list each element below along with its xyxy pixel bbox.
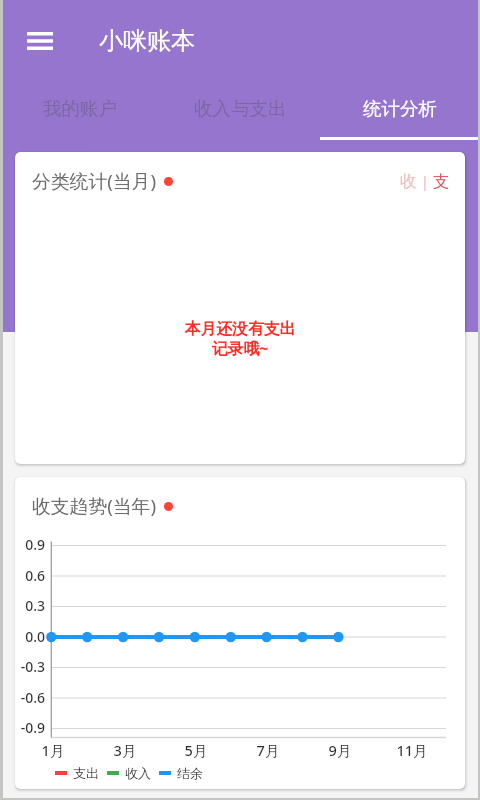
staticText: 分类统计(当月) (32, 168, 157, 194)
staticText: 7月 (243, 740, 293, 760)
staticText: 0.9 (15, 535, 45, 554)
button[interactable]: 统计分析 (320, 82, 480, 138)
staticText: -0.9 (15, 718, 45, 737)
staticText: 11月 (387, 740, 437, 760)
button[interactable]: Menu (18, 19, 62, 63)
staticText: 5月 (171, 740, 221, 760)
staticText: 结余 (177, 765, 203, 781)
staticText: 小咪账本 (99, 26, 195, 56)
button[interactable]: 支 (433, 171, 450, 192)
staticText: 收入 (125, 765, 151, 781)
staticText: 0.3 (15, 596, 45, 615)
button[interactable]: 收入与支出 (160, 82, 320, 138)
staticText: 支出 (73, 765, 99, 781)
staticText: 3月 (100, 740, 150, 760)
staticText: 收入与支出 (194, 97, 287, 120)
staticText: -0.3 (15, 657, 45, 676)
staticText: 9月 (315, 740, 365, 760)
staticText: 0.6 (15, 566, 45, 585)
staticText: 本月还没有支出 记录哦~ (15, 319, 465, 358)
staticText: 统计分析 (363, 97, 437, 120)
staticText: -0.6 (15, 688, 45, 707)
button[interactable]: 我的账户 (0, 82, 160, 138)
staticText: 我的账户 (43, 97, 117, 120)
button[interactable]: 收 (400, 171, 417, 192)
staticText: | (421, 172, 429, 191)
staticText: 0.0 (15, 627, 45, 646)
staticText: 收支趋势(当年) (32, 493, 157, 519)
staticText: 1月 (28, 740, 78, 760)
